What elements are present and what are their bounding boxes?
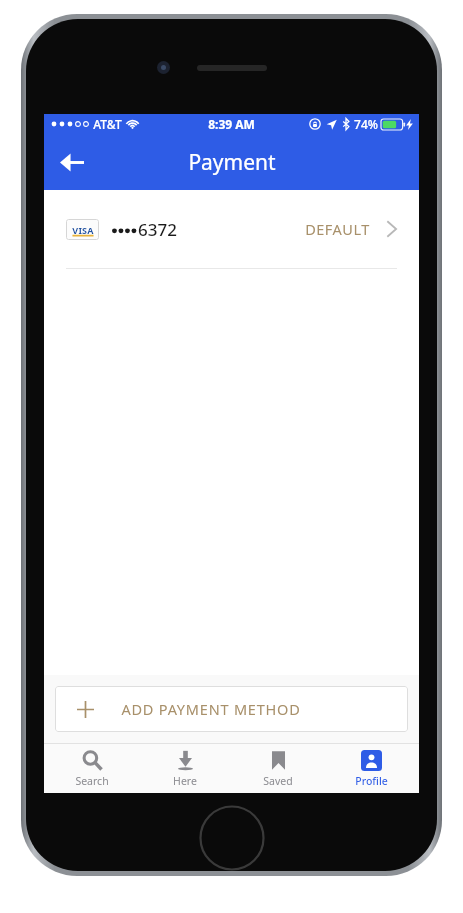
button[interactable]: Search	[47, 744, 137, 793]
staticText: DEFAULT	[305, 219, 370, 239]
button[interactable]: VISA	[44, 190, 419, 268]
staticText: Here	[173, 774, 197, 788]
staticText: AT&T	[93, 116, 122, 132]
button[interactable]: ADD PAYMENT METHOD	[55, 686, 408, 732]
staticText: ADD PAYMENT METHOD	[121, 699, 301, 719]
button[interactable]: Profile	[326, 744, 416, 793]
staticText: 74%	[354, 116, 378, 132]
staticText: VISA	[72, 224, 94, 236]
staticText: Profile	[355, 774, 388, 788]
button[interactable]: Back	[50, 140, 94, 184]
staticText: Saved	[263, 774, 293, 788]
staticText: Payment	[188, 148, 276, 177]
button[interactable]: Here	[140, 744, 230, 793]
button[interactable]: Saved	[233, 744, 323, 793]
staticText: 6372	[138, 218, 177, 241]
staticText: 8:39 AM	[208, 116, 255, 132]
staticText: Search	[75, 774, 109, 788]
